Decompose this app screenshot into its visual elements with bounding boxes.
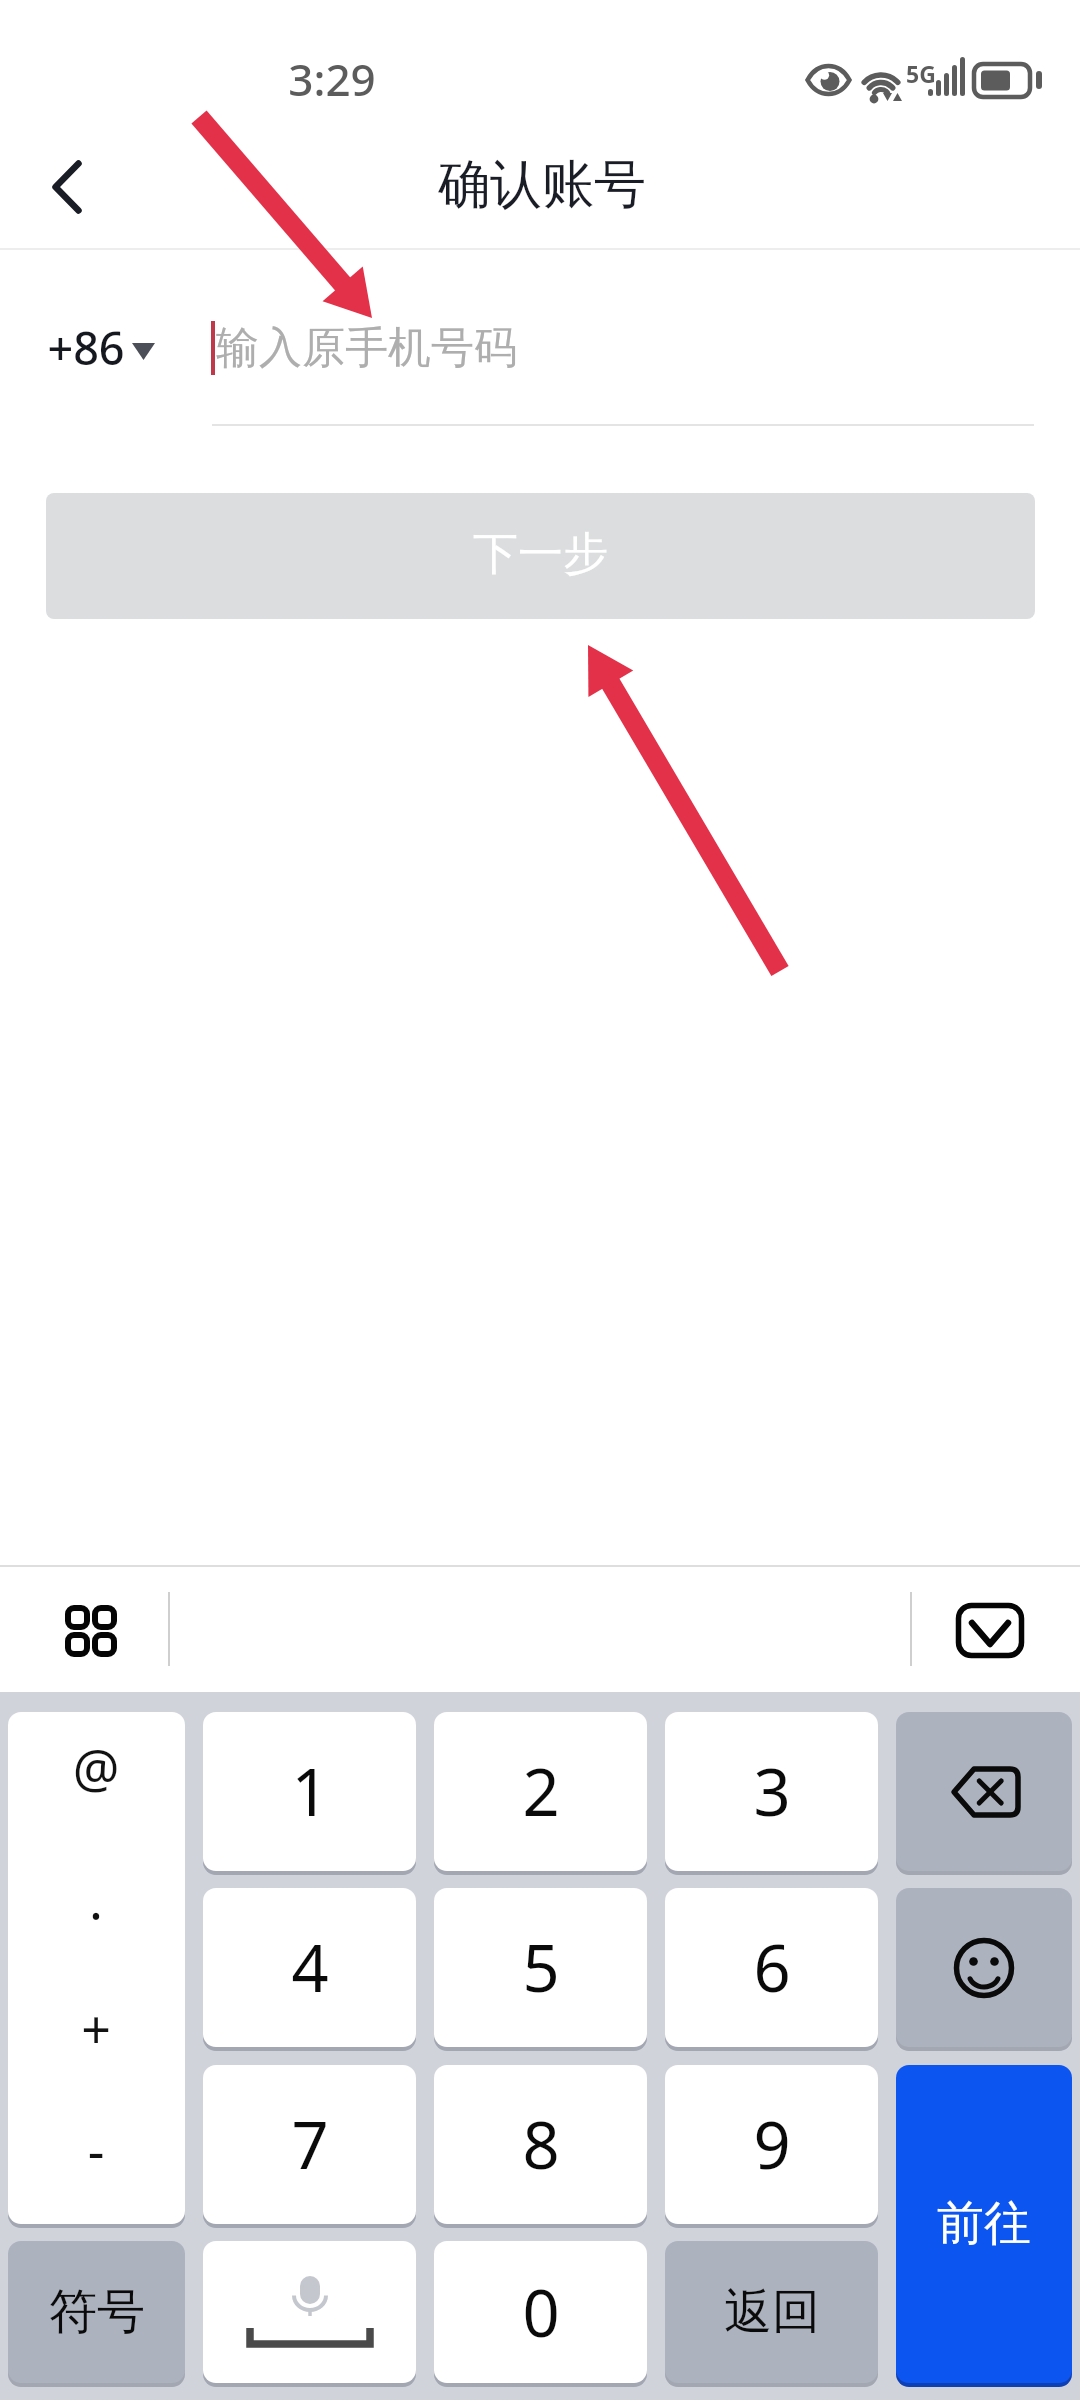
button[interactable]: Keyboard layouts	[35, 1575, 147, 1687]
staticText: 5G	[906, 58, 936, 89]
button[interactable]: 符号	[8, 2241, 185, 2383]
button[interactable]: Backspace	[896, 1712, 1072, 1871]
staticText: ·	[66, 1879, 126, 1950]
staticText: 3	[753, 1747, 791, 1836]
button[interactable]: 9	[665, 2065, 878, 2224]
button[interactable]: Emoji	[896, 1888, 1072, 2047]
button[interactable]: 5	[434, 1888, 647, 2047]
staticText: 5	[522, 1923, 560, 2012]
button[interactable]: 下一步	[46, 493, 1035, 619]
staticText: 0	[522, 2268, 560, 2357]
staticText: 6	[753, 1923, 791, 2012]
button[interactable]: 4	[203, 1888, 416, 2047]
button[interactable]: 2	[434, 1712, 647, 1871]
staticText: 3:29	[288, 49, 376, 109]
staticText: 1	[291, 1747, 329, 1836]
button[interactable]: 返回	[665, 2241, 878, 2383]
button[interactable]: 7	[203, 2065, 416, 2224]
staticText: +	[66, 1993, 126, 2064]
staticText: 返回	[724, 2282, 820, 2342]
button[interactable]: 0	[434, 2241, 647, 2383]
staticText: 下一步	[473, 526, 608, 583]
staticText: 确认账号	[438, 152, 646, 218]
staticText: @	[66, 1732, 126, 1803]
button[interactable]: 3	[665, 1712, 878, 1871]
button[interactable]: 前往	[896, 2065, 1072, 2383]
button[interactable]: 1	[203, 1712, 416, 1871]
staticText: 2	[522, 1747, 560, 1836]
staticText: -	[66, 2114, 126, 2185]
staticText: 8	[522, 2100, 560, 2189]
staticText: 符号	[49, 2282, 145, 2342]
button[interactable]: Back	[14, 136, 118, 236]
button[interactable]: 8	[434, 2065, 647, 2224]
button[interactable]: Hide keyboard	[932, 1575, 1044, 1687]
staticText: 9	[753, 2100, 791, 2189]
staticText: 4	[291, 1923, 329, 2012]
button[interactable]: Symbols @ . + -	[8, 1712, 185, 2224]
button[interactable]: +86	[34, 310, 174, 386]
staticText: +86	[47, 317, 125, 378]
staticText: 前往	[937, 2194, 1031, 2253]
staticText: 7	[291, 2100, 329, 2189]
button[interactable]: Voice input	[203, 2241, 416, 2383]
button[interactable]: 6	[665, 1888, 878, 2047]
staticText: 输入原手机号码	[216, 321, 517, 375]
